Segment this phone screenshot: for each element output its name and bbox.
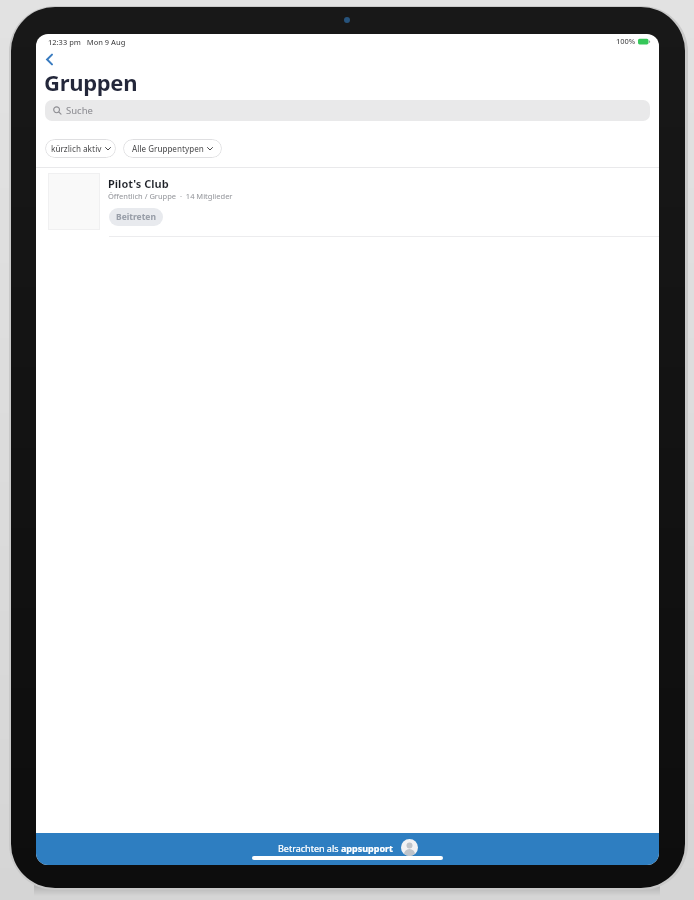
staticText: Öffentlich / Gruppe · 14 Mitglieder [108, 191, 233, 201]
button[interactable]: Alle Gruppentypen [123, 139, 222, 158]
staticText: Alle Gruppentypen [132, 143, 204, 154]
staticText: Gruppen [44, 67, 138, 97]
staticText: Beitreten [116, 211, 156, 223]
button[interactable]: Beitreten [109, 208, 163, 226]
button[interactable]: Betrachten als appsupport [36, 833, 659, 865]
staticText: 100% [616, 36, 636, 46]
staticText: 12:33 pm Mon 9 Aug [48, 37, 126, 47]
staticText: kürzlich aktiv [51, 143, 102, 154]
staticText: Suche [66, 104, 93, 117]
button[interactable] [40, 48, 62, 70]
button[interactable] [36, 168, 659, 237]
button[interactable]: kürzlich aktiv [45, 139, 116, 158]
staticText: Betrachten als appsupport [278, 842, 393, 854]
staticText: Pilot's Club [108, 176, 169, 191]
button[interactable]: Suche [45, 100, 650, 121]
